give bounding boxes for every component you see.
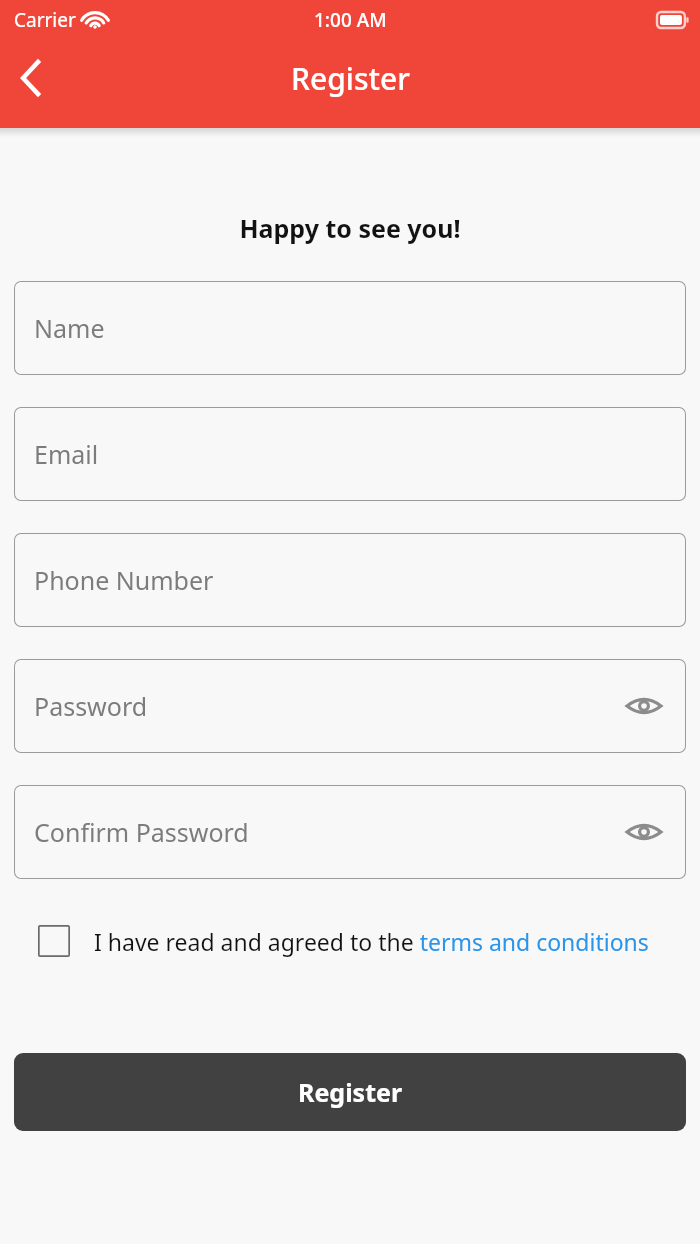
button[interactable]: Confirm Password — [14, 785, 686, 879]
staticText: Password — [34, 689, 148, 723]
staticText: Happy to see you! — [0, 211, 700, 245]
staticText: Name — [34, 311, 105, 345]
staticText: Carrier — [14, 7, 76, 33]
button[interactable]: Back — [0, 47, 62, 109]
staticText: Phone Number — [34, 563, 214, 597]
button[interactable]: Phone Number — [14, 533, 686, 627]
staticText: 1:00 AM — [314, 7, 387, 33]
button[interactable]: I have read and agreed to the terms and … — [14, 925, 686, 957]
button[interactable]: Toggle password visibility — [622, 684, 666, 728]
button[interactable]: Register — [14, 1053, 686, 1131]
button[interactable]: Email — [14, 407, 686, 501]
button[interactable]: Password — [14, 659, 686, 753]
staticText: I have read and agreed to the terms and … — [94, 926, 649, 957]
staticText: Email — [34, 437, 99, 471]
button[interactable]: Toggle password visibility — [622, 810, 666, 854]
button[interactable]: Name — [14, 281, 686, 375]
staticText: Confirm Password — [34, 815, 249, 849]
staticText: Register — [291, 58, 410, 99]
staticText: Register — [298, 1075, 403, 1109]
